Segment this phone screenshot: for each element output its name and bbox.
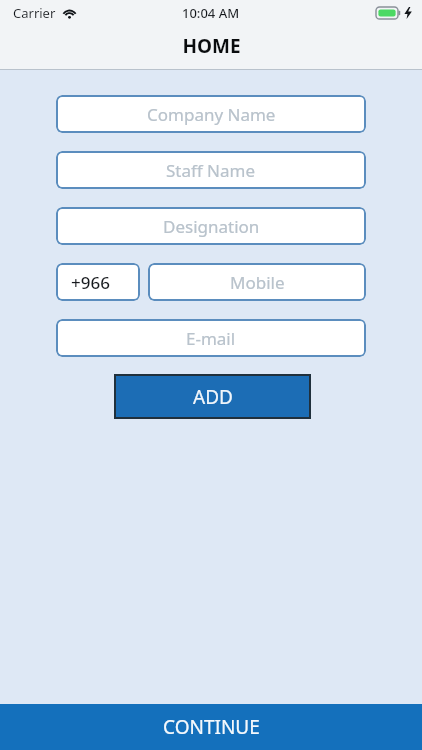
button[interactable]: Company Name bbox=[56, 95, 366, 133]
staticText: CONTINUE bbox=[163, 714, 260, 740]
staticText: E-mail bbox=[186, 327, 236, 350]
button[interactable]: Designation bbox=[56, 207, 366, 245]
button[interactable]: CONTINUE bbox=[0, 704, 422, 750]
staticText: ADD bbox=[193, 384, 233, 410]
staticText: Designation bbox=[163, 215, 260, 238]
staticText: +966 bbox=[71, 271, 110, 294]
button[interactable]: Mobile bbox=[148, 263, 366, 301]
staticText: Mobile bbox=[230, 271, 285, 294]
staticText: 10:04 AM bbox=[182, 4, 240, 22]
staticText: Staff Name bbox=[166, 159, 256, 182]
staticText: HOME bbox=[182, 33, 241, 59]
button[interactable]: +966 bbox=[56, 263, 140, 301]
other: Charging bbox=[404, 7, 412, 19]
other: Battery bbox=[376, 7, 401, 19]
staticText: Carrier bbox=[13, 4, 56, 22]
other: Wi-Fi bbox=[62, 7, 77, 19]
staticText: Company Name bbox=[147, 103, 276, 126]
button[interactable]: Staff Name bbox=[56, 151, 366, 189]
button[interactable]: ADD bbox=[114, 374, 311, 419]
button[interactable]: E-mail bbox=[56, 319, 366, 357]
